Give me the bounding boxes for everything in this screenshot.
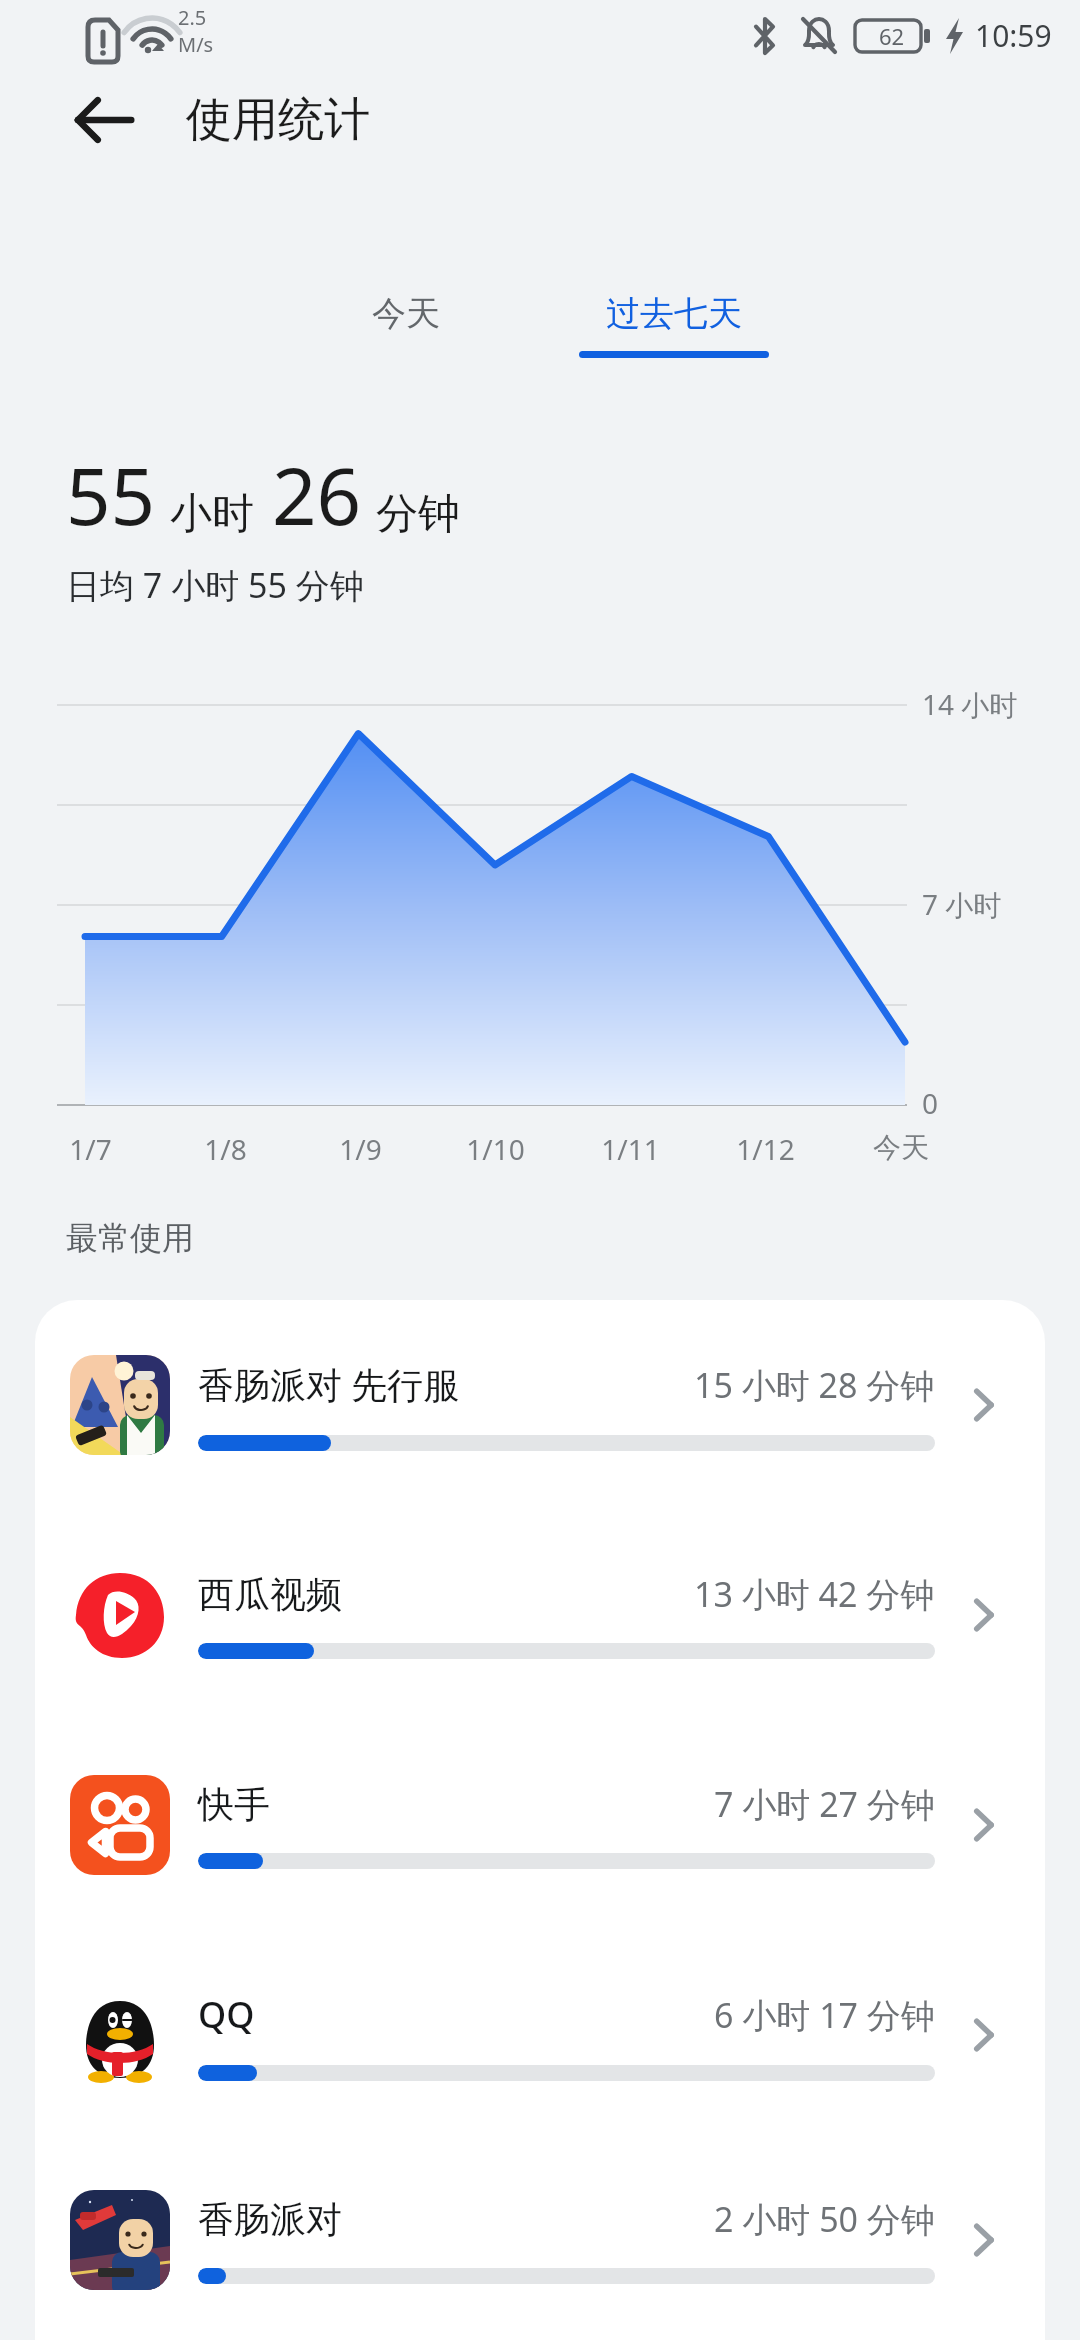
staticText: 香肠派对	[198, 2197, 342, 2242]
staticText: 日均 7 小时 55 分钟	[66, 562, 364, 608]
staticText: 最常使用	[66, 1218, 194, 1258]
button[interactable]: 今天	[281, 278, 531, 394]
staticText: 14 小时	[922, 685, 1018, 723]
other: 查看详情	[949, 1996, 1027, 2074]
staticText: 7 小时 27 分钟	[714, 1781, 935, 1827]
staticText: 使用统计	[186, 91, 370, 149]
button[interactable]: 快手	[35, 1720, 1045, 1930]
staticText: 6 小时 17 分钟	[714, 1992, 935, 2038]
staticText: 62	[879, 21, 905, 51]
button[interactable]: 香肠派对	[35, 2140, 1045, 2340]
staticText: 今天	[873, 1130, 929, 1165]
staticText: 2 小时 50 分钟	[714, 2196, 935, 2242]
button[interactable]: 过去七天	[549, 278, 799, 394]
staticText: 1/8	[204, 1130, 247, 1168]
staticText: M/s	[178, 31, 214, 58]
staticText: QQ	[198, 1990, 255, 2039]
button[interactable]: QQ	[35, 1930, 1045, 2140]
staticText: 10:59	[975, 15, 1052, 56]
other: 查看详情	[949, 1366, 1027, 1444]
button[interactable]: 返回	[48, 70, 160, 170]
other: 查看详情	[949, 1576, 1027, 1654]
other: 查看详情	[949, 1786, 1027, 1864]
staticText: 0	[922, 1084, 939, 1122]
staticText: 分钟	[376, 488, 460, 541]
staticText: 1/7	[69, 1130, 112, 1168]
staticText: 15 小时 28 分钟	[694, 1362, 935, 1408]
staticText: 小时	[170, 488, 254, 541]
staticText: 7 小时	[922, 885, 1002, 923]
staticText: 香肠派对 先行服	[198, 1360, 460, 1409]
staticText: 55	[66, 442, 156, 548]
staticText: 2.5	[178, 4, 207, 31]
staticText: 西瓜视频	[198, 1572, 342, 1617]
button[interactable]: 香肠派对 先行服	[35, 1300, 1045, 1510]
staticText: 1/12	[736, 1130, 795, 1168]
button[interactable]: 西瓜视频	[35, 1510, 1045, 1720]
staticText: 过去七天	[606, 292, 742, 335]
staticText: 快手	[198, 1782, 270, 1827]
staticText: 今天	[372, 292, 440, 335]
staticText: 1/11	[601, 1130, 660, 1168]
staticText: 13 小时 42 分钟	[694, 1571, 935, 1617]
staticText: 26	[272, 442, 362, 548]
staticText: 1/9	[339, 1130, 382, 1168]
staticText: 1/10	[466, 1130, 525, 1168]
other: 查看详情	[949, 2201, 1027, 2279]
